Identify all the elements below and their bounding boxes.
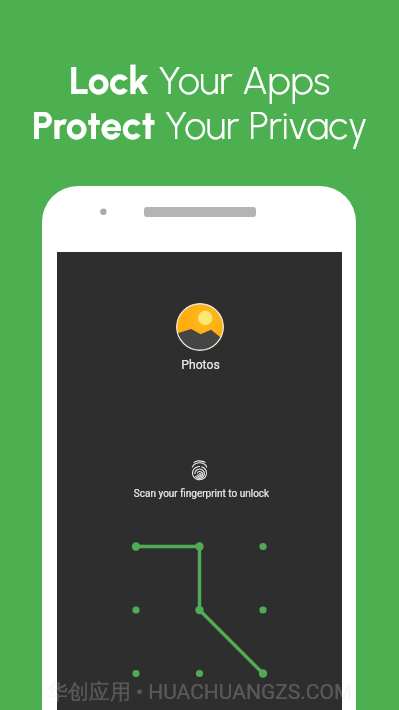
button[interactable]: Scan fingerprint	[192, 460, 207, 480]
staticText: Protect Your Privacy	[0, 102, 399, 149]
staticText: Lock Your Apps	[0, 57, 399, 104]
staticText: Photos	[58, 358, 343, 372]
button[interactable]: Photos	[176, 303, 224, 351]
staticText: 华创应用 • HUACHUANGZS.COM	[0, 679, 399, 705]
staticText: Scan your fingerprint to unlock	[59, 488, 344, 500]
